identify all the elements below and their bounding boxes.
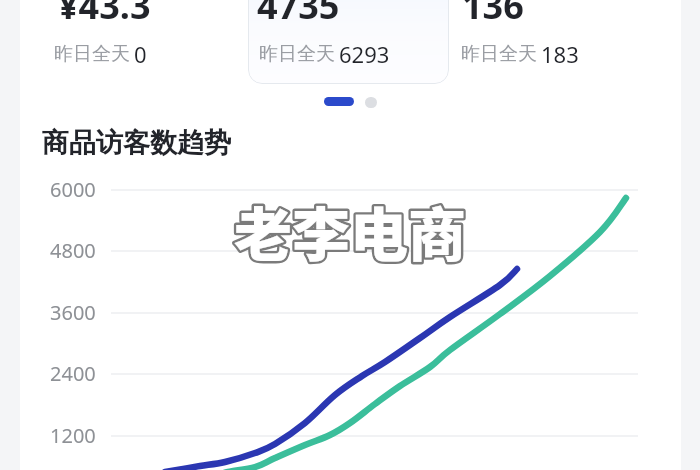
staticText: 1200: [50, 422, 96, 449]
staticText: ¥43.3: [58, 0, 151, 30]
button[interactable]: 商品访客数趋势: [42, 126, 231, 160]
staticText: 老李电商: [234, 189, 467, 273]
staticText: 老李电商: [234, 189, 467, 273]
staticText: 昨日全天: [461, 42, 537, 66]
staticText: 商品访客数趋势: [42, 126, 231, 160]
button[interactable]: 第一页: [324, 97, 354, 106]
staticText: 136: [462, 0, 524, 30]
staticText: 昨日全天: [54, 42, 130, 66]
staticText: 2400: [50, 360, 96, 387]
staticText: 0: [134, 39, 147, 69]
staticText: 3600: [50, 299, 96, 326]
staticText: 4800: [50, 237, 96, 264]
button[interactable]: 商品访客数卡片: [248, 0, 449, 84]
staticText: 6293: [339, 39, 390, 69]
staticText: 183: [541, 39, 579, 69]
button[interactable]: 第二页: [365, 97, 377, 108]
staticText: 4735: [257, 0, 340, 30]
staticText: 昨日全天: [259, 42, 335, 66]
staticText: 6000: [50, 176, 96, 203]
